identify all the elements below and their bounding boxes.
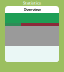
staticText: Statistics [23, 0, 41, 6]
staticText: Overview [23, 7, 40, 12]
